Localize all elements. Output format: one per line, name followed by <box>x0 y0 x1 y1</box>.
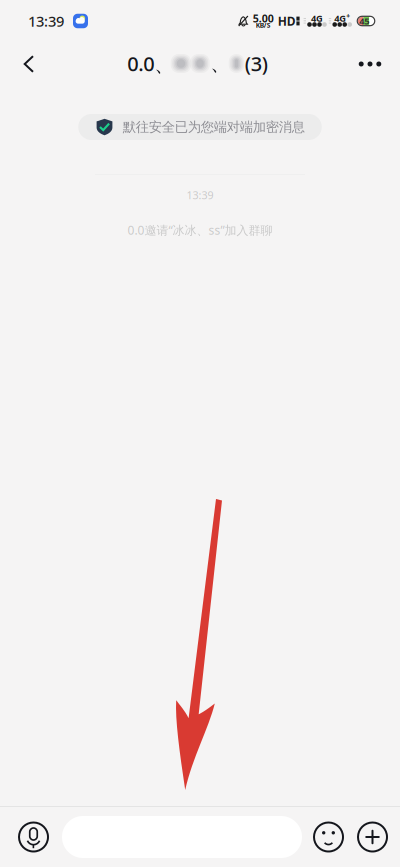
button[interactable]: Back <box>7 42 51 86</box>
staticText: 13:39 <box>186 188 213 202</box>
staticText: 45 <box>359 15 369 27</box>
staticText: 4G <box>311 12 323 24</box>
staticText: 、 <box>210 51 230 76</box>
staticText: 4G <box>334 12 346 24</box>
staticText: HD <box>278 13 296 29</box>
button[interactable]: More <box>357 821 388 852</box>
staticText: 5.00 <box>253 11 274 25</box>
staticText: 默往安全已为您端对端加密消息 <box>123 119 305 135</box>
button[interactable]: Record voice message <box>18 821 49 852</box>
staticText: (3) <box>245 50 268 77</box>
staticText: 0.0、 <box>127 50 174 77</box>
button[interactable]: More options <box>348 42 392 86</box>
staticText: + <box>346 11 350 20</box>
staticText: KB/S <box>256 21 271 30</box>
staticText: 0.0邀请“冰冰、ss”加入群聊 <box>127 222 272 238</box>
staticText: 13:39 <box>28 11 64 31</box>
button[interactable]: Emoji <box>313 821 344 852</box>
